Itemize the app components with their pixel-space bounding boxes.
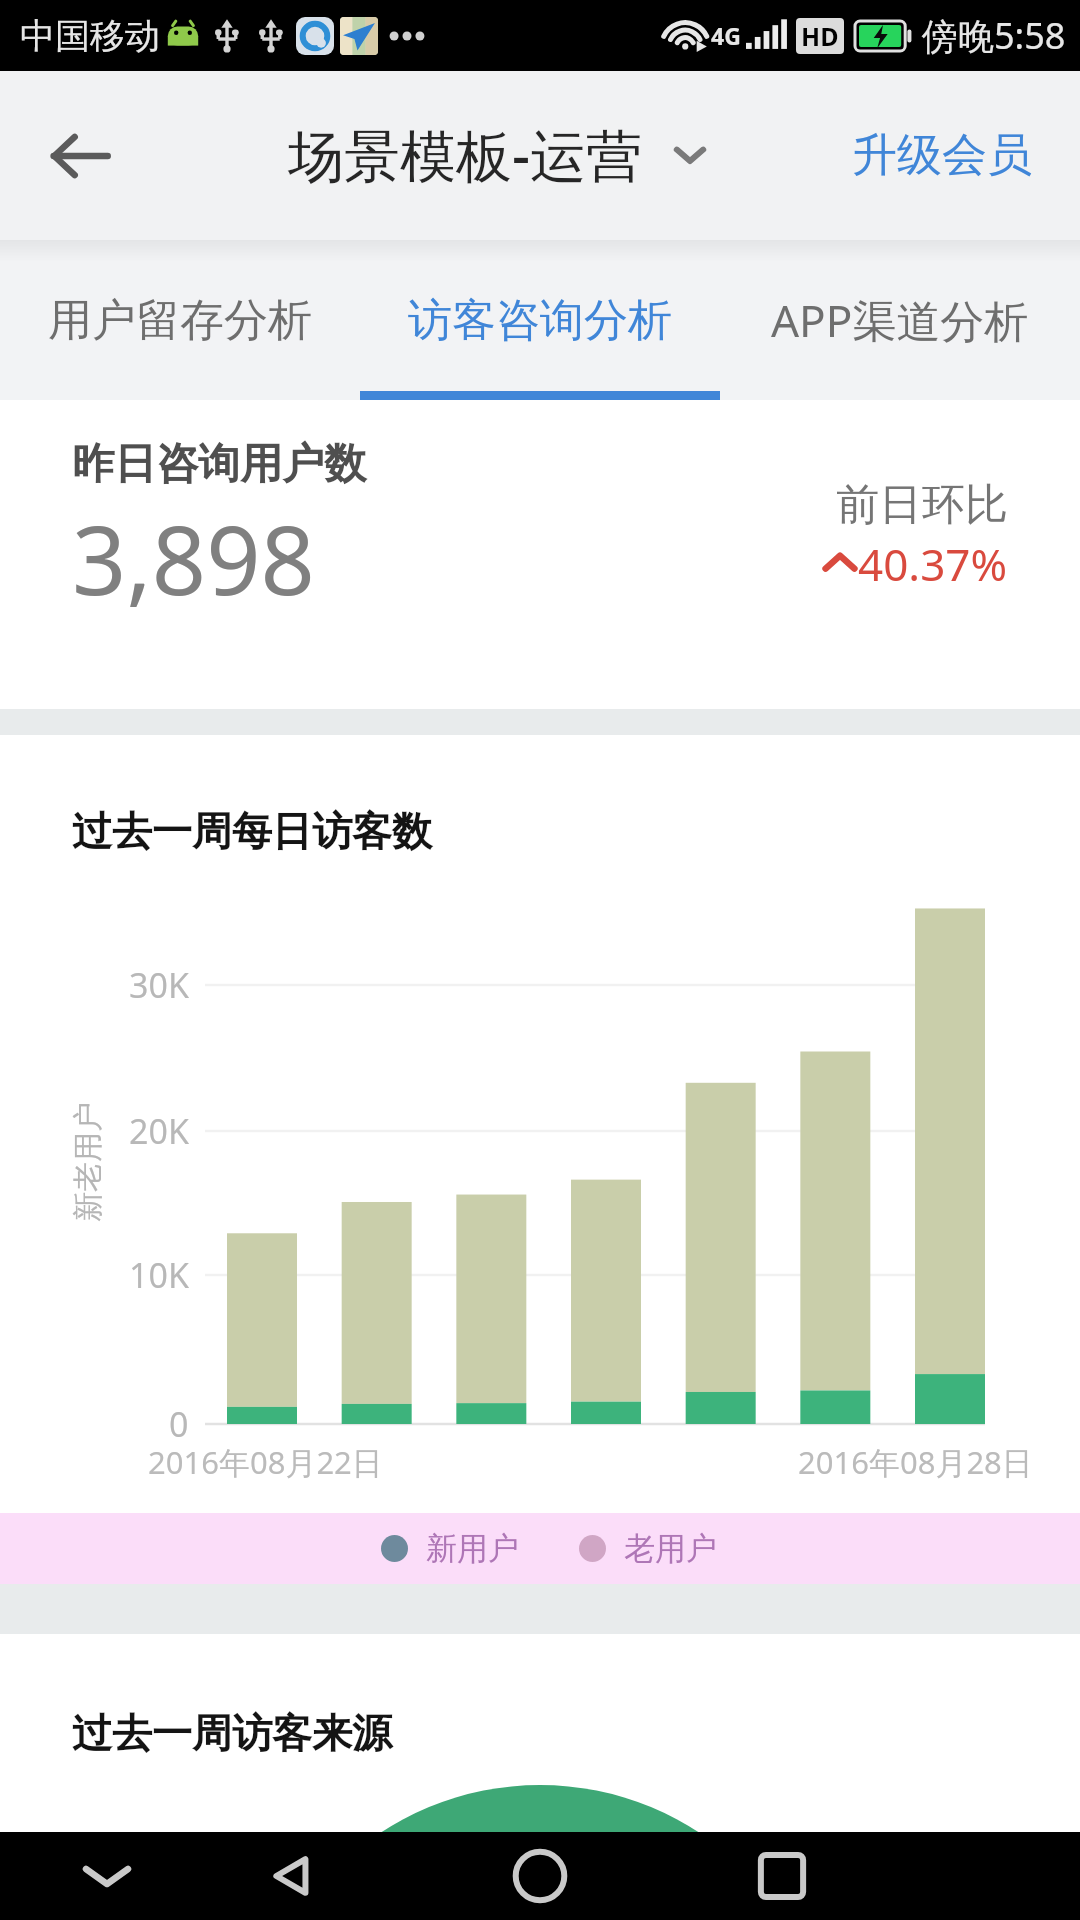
staticText: 过去一周访客来源 xyxy=(72,1708,392,1758)
staticText: 傍晚5:58 xyxy=(922,11,1066,60)
button[interactable]: Recents xyxy=(727,1832,837,1920)
button[interactable]: Hide keyboard xyxy=(52,1832,162,1920)
staticText: 40.37% xyxy=(858,534,1008,594)
button[interactable]: 过去一周访客来源 xyxy=(0,1634,1080,1832)
button[interactable]: Back xyxy=(237,1832,347,1920)
staticText: 新用户 xyxy=(426,1529,519,1568)
staticText: 场景模板-运营 xyxy=(288,116,642,192)
staticText: 2016年08月22日 xyxy=(148,1441,383,1483)
staticText: APP渠道分析 xyxy=(771,290,1029,350)
staticText: 10K xyxy=(129,1252,189,1298)
staticText: 2016年08月28日 xyxy=(798,1441,1033,1483)
button[interactable]: 用户留存分析 xyxy=(0,240,360,400)
staticText: 昨日咨询用户数 xyxy=(72,438,366,491)
staticText: 0 xyxy=(169,1401,189,1447)
staticText: 3,898 xyxy=(72,493,315,622)
staticText: 老用户 xyxy=(624,1529,717,1568)
button[interactable]: 访客咨询分析 xyxy=(360,240,720,400)
staticText: 过去一周每日访客数 xyxy=(72,806,432,856)
staticText: 访客咨询分析 xyxy=(408,293,672,348)
staticText: 4G xyxy=(711,20,741,51)
button[interactable]: Home xyxy=(485,1832,595,1920)
staticText: 升级会员 xyxy=(852,127,1032,184)
button[interactable]: 昨日咨询用户数 xyxy=(0,400,1080,709)
staticText: 新老用户 xyxy=(69,1102,107,1222)
staticText: 中国移动 xyxy=(20,14,160,58)
staticText: 20K xyxy=(129,1108,189,1154)
staticText: 30K xyxy=(129,962,189,1008)
button[interactable]: 升级会员 xyxy=(827,71,1057,240)
staticText: 前日环比 xyxy=(836,478,1008,532)
button[interactable]: 过去一周每日访客数 xyxy=(0,735,1080,1584)
button[interactable]: APP渠道分析 xyxy=(720,240,1080,400)
staticText: 用户留存分析 xyxy=(48,293,312,348)
button[interactable]: Back xyxy=(0,71,160,240)
button[interactable]: 场景模板-运营 xyxy=(288,116,712,192)
staticText: HD xyxy=(801,19,839,53)
